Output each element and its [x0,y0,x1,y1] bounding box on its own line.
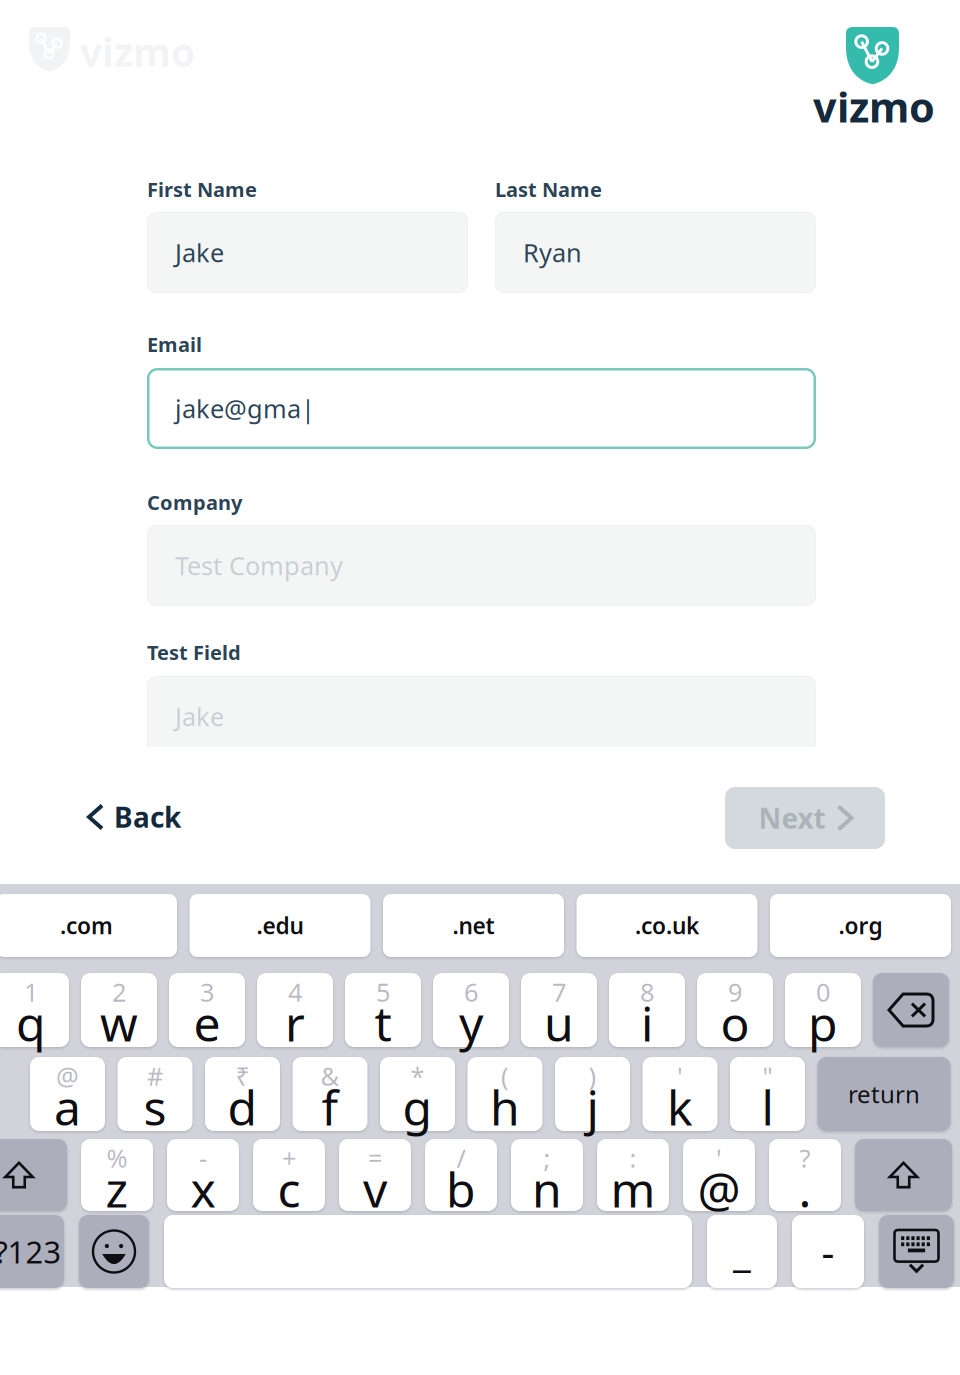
staticText: @ [697,1157,740,1221]
button[interactable]: Ryan [495,212,816,293]
staticText: l [761,1075,773,1139]
button[interactable]: 3 [169,973,245,1047]
staticText: a [54,1075,81,1139]
button[interactable]: : [597,1139,669,1211]
staticText: .edu [256,910,303,940]
staticText: 8 [640,975,654,1009]
staticText: Back [114,798,181,836]
button[interactable]: & [292,1057,367,1131]
button[interactable]: 6 [433,973,509,1047]
staticText: & [320,1059,339,1093]
staticText: t [374,991,391,1055]
staticText: e [193,991,220,1055]
button[interactable]: Emoji [79,1215,149,1288]
staticText: vizmo [80,26,195,77]
button[interactable]: % [81,1139,153,1211]
staticText: j [586,1075,598,1139]
staticText: f [321,1075,338,1139]
staticText: k [667,1075,693,1139]
staticText: y [459,991,483,1055]
staticText: Test Company [175,549,343,582]
button[interactable]: 8 [609,973,685,1047]
staticText: Ryan [523,236,582,269]
button[interactable]: Test Company [147,525,816,606]
button[interactable]: @ [30,1057,105,1131]
staticText: 6 [464,975,478,1009]
button[interactable]: ' [683,1139,755,1211]
staticText: Test Field [147,639,241,666]
staticText: c [277,1157,300,1221]
button[interactable]: ₹ [205,1057,280,1131]
staticText: w [100,991,138,1055]
staticText: % [106,1141,127,1175]
button[interactable]: 4 [257,973,333,1047]
staticText: Last Name [495,176,602,203]
staticText: / [456,1141,465,1175]
button[interactable]: .org [770,894,951,957]
button[interactable]: Delete [873,973,949,1047]
button[interactable]: 1 [0,973,69,1047]
button[interactable]: Back [69,786,201,848]
button[interactable]: .net [383,894,564,957]
button[interactable]: ( [467,1057,542,1131]
button[interactable]: Shift [0,1139,67,1211]
button[interactable]: Jake [147,212,468,293]
staticText: x [190,1157,215,1221]
button[interactable]: - [792,1215,864,1288]
staticText: i [641,991,653,1055]
button[interactable]: 2 [81,973,157,1047]
button[interactable]: - [167,1139,239,1211]
staticText: ₹ [235,1059,249,1093]
button[interactable]: 0 [785,973,861,1047]
staticText: .org [838,910,882,940]
staticText: return [848,1078,920,1110]
button[interactable]: = [339,1139,411,1211]
button[interactable]: ; [511,1139,583,1211]
staticText: .net [452,910,494,940]
button[interactable]: " [730,1057,805,1131]
staticText: u [544,991,574,1055]
button[interactable]: ? [769,1139,841,1211]
button[interactable]: 9 [697,973,773,1047]
staticText: ? [799,1141,810,1175]
staticText: Jake [175,236,224,269]
staticText: ' [716,1141,722,1175]
staticText: jake@gma| [175,392,315,425]
button[interactable]: jake@gma| [147,368,816,449]
staticText: n [532,1157,562,1221]
button[interactable]: Next [725,787,885,849]
button[interactable]: 7 [521,973,597,1047]
button[interactable]: 5 [345,973,421,1047]
staticText: 9 [728,975,742,1009]
staticText: .co.uk [635,910,699,940]
staticText: q [16,991,46,1055]
staticText: 0 [816,975,830,1009]
staticText: _ [733,1225,751,1278]
button[interactable]: .edu [189,894,370,957]
button[interactable]: .com [0,894,177,957]
button[interactable]: # [117,1057,192,1131]
button[interactable]: .co.uk [576,894,757,957]
button[interactable]: ' [642,1057,717,1131]
staticText: vizmo [813,79,935,134]
staticText: .com [60,910,113,940]
staticText: o [720,991,749,1055]
staticText: .?123 [0,1231,61,1272]
staticText: g [402,1075,432,1139]
button[interactable]: _ [707,1215,777,1288]
staticText: : [629,1141,636,1175]
button[interactable]: Jake [147,676,816,757]
button[interactable]: return [817,1057,950,1131]
button[interactable]: / [425,1139,497,1211]
button[interactable]: + [253,1139,325,1211]
staticText: Email [147,331,202,358]
button[interactable]: Shift [855,1139,952,1211]
button[interactable]: * [380,1057,455,1131]
staticText: 5 [376,975,390,1009]
button[interactable]: .?123 [0,1215,64,1288]
button[interactable]: ) [555,1057,630,1131]
button[interactable]: Hide Keyboard [879,1215,954,1288]
staticText: - [821,1225,834,1278]
staticText: 7 [552,975,566,1009]
